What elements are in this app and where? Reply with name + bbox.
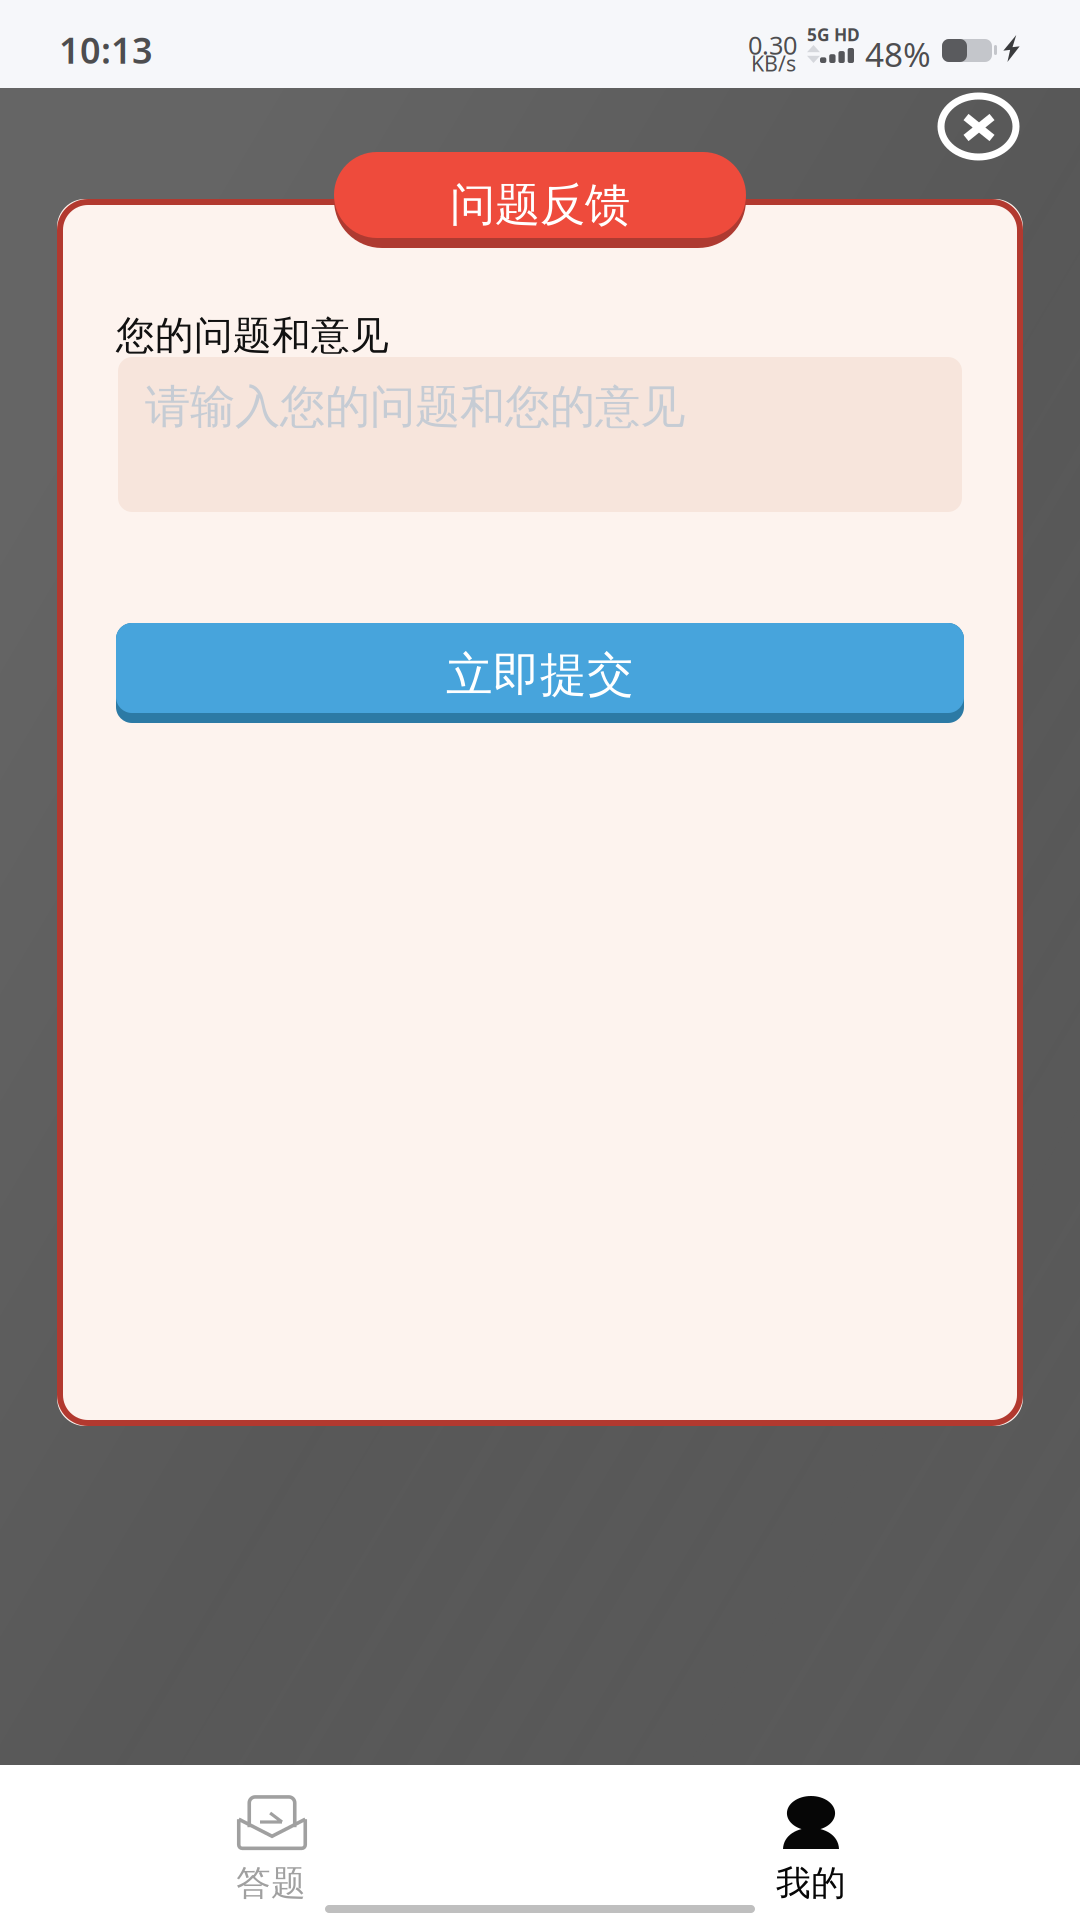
staticText: 10:13 <box>59 26 153 74</box>
staticText: 48% <box>865 32 931 76</box>
staticText: 问题反馈 <box>450 177 630 233</box>
staticText: 答题 <box>236 1862 306 1905</box>
button[interactable]: Close <box>926 81 1032 173</box>
staticText: 您的问题和意见 <box>116 312 389 359</box>
staticText: 请输入您的问题和您的意见 <box>145 379 685 435</box>
staticText: 立即提交 <box>446 646 634 704</box>
button[interactable]: 答题 <box>0 1765 540 1915</box>
staticText: HD <box>834 23 860 46</box>
staticText: KB/s <box>751 49 796 77</box>
staticText: 0.30 <box>748 28 797 62</box>
staticText: 5G <box>807 23 830 46</box>
button[interactable]: 问题反馈 <box>334 152 746 248</box>
button[interactable]: 立即提交 <box>116 623 964 723</box>
button[interactable]: 我的 <box>540 1765 1080 1915</box>
staticText: 我的 <box>776 1862 846 1905</box>
